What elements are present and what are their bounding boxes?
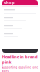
staticText: Supporting copy line one goes xyxy=(1,66,38,72)
staticText: shop xyxy=(4,0,15,5)
staticText: Headline in brand pink xyxy=(2,54,38,65)
